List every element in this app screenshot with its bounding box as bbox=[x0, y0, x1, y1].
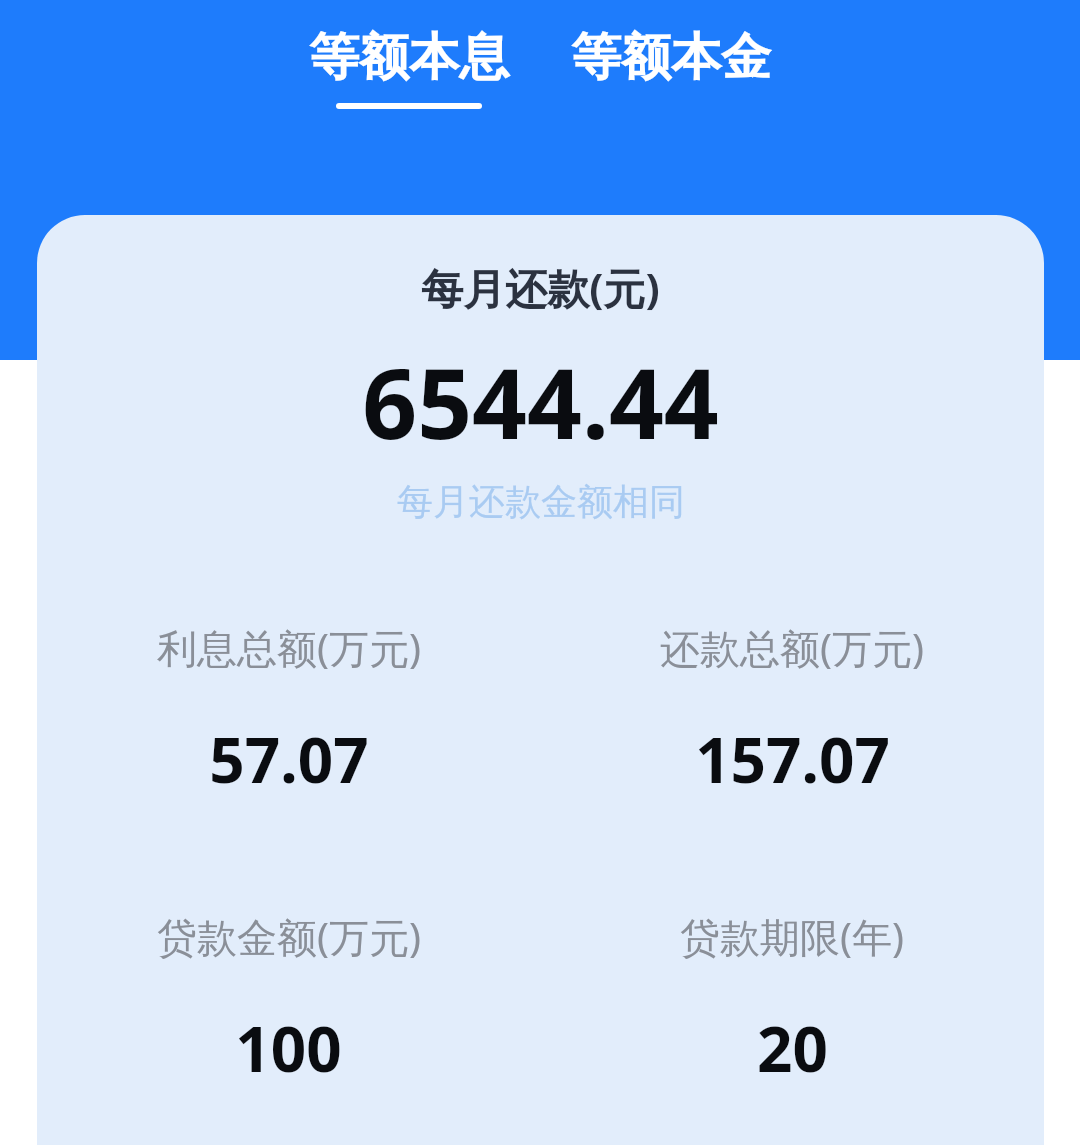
staticText: 等额本金 bbox=[571, 26, 771, 89]
staticText: 贷款金额(万元) bbox=[157, 909, 421, 964]
staticText: 每月还款(元) bbox=[421, 259, 660, 316]
button[interactable]: 贷款期限(年) bbox=[540, 909, 1044, 1090]
staticText: 57.07 bbox=[209, 717, 369, 801]
staticText: 贷款期限(年) bbox=[680, 909, 904, 964]
staticText: 20 bbox=[757, 1006, 828, 1090]
button[interactable]: 利息总额(万元) bbox=[37, 620, 540, 801]
staticText: 利息总额(万元) bbox=[157, 620, 421, 675]
button[interactable]: 每月还款(元) bbox=[37, 215, 1044, 1145]
other: 等额本金 bbox=[540, 26, 802, 109]
staticText: 每月还款金额相同 bbox=[397, 479, 685, 524]
staticText: 157.07 bbox=[695, 717, 890, 801]
button[interactable]: 等额本金 bbox=[571, 26, 771, 109]
staticText: 等额本息 bbox=[309, 26, 509, 89]
other: 等额本息 bbox=[278, 26, 540, 109]
button[interactable]: 贷款金额(万元) bbox=[37, 909, 540, 1090]
staticText: 还款总额(万元) bbox=[660, 620, 924, 675]
button[interactable]: 还款总额(万元) bbox=[540, 620, 1044, 801]
button[interactable]: 等额本息 bbox=[309, 26, 509, 109]
staticText: 100 bbox=[235, 1006, 342, 1090]
staticText: 6544.44 bbox=[362, 336, 719, 467]
